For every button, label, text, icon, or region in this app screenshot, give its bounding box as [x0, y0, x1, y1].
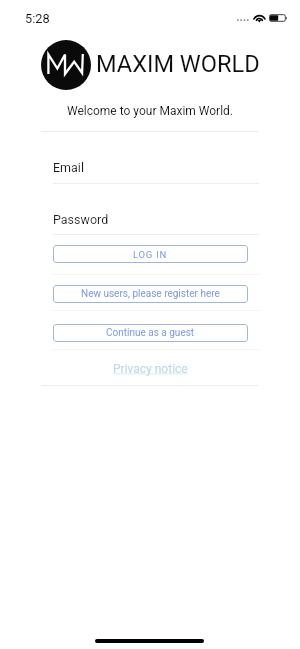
staticText: Continue as a guest [106, 327, 195, 339]
other: Maxim World logo [41, 40, 91, 90]
staticText: Welcome to your Maxim World. [0, 104, 300, 118]
staticText: Privacy notice [113, 362, 188, 376]
staticText: 5:28 [25, 11, 50, 26]
staticText: Email [53, 160, 84, 175]
button[interactable]: Privacy notice [113, 362, 188, 376]
staticText: LOG IN [133, 249, 168, 260]
button[interactable]: New users, please register here [53, 285, 248, 303]
staticText: Password [53, 212, 109, 227]
staticText: New users, please register here [81, 288, 220, 300]
button[interactable]: Continue as a guest [53, 324, 248, 342]
staticText: MAXIM WORLD [96, 50, 260, 78]
button[interactable]: LOG IN [53, 245, 248, 263]
